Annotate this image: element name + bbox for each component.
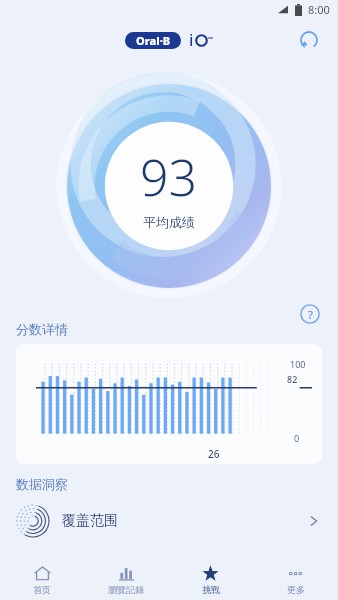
staticText: 首页 <box>33 584 51 595</box>
button[interactable]: 挑戰 <box>168 556 253 600</box>
staticText: 挑戰 <box>202 584 220 595</box>
staticText: ? <box>308 307 313 322</box>
button[interactable]: Refresh <box>294 25 324 55</box>
staticText: 93 <box>140 143 198 211</box>
staticText: 平均成绩 <box>143 214 195 230</box>
staticText: 瀏覽記錄 <box>108 584 144 595</box>
staticText: 更多 <box>287 584 305 595</box>
staticText: 82 <box>287 373 298 385</box>
button[interactable]: Help <box>296 300 324 328</box>
staticText: i <box>189 29 194 51</box>
staticText: 0 <box>294 432 300 444</box>
staticText: Oral·B <box>136 33 171 48</box>
button[interactable]: 首页 <box>0 556 84 600</box>
staticText: 100 <box>290 358 306 370</box>
staticText: 8:00 <box>308 2 330 17</box>
button[interactable]: 更多 <box>253 556 338 600</box>
button[interactable]: 100 <box>16 344 322 464</box>
button[interactable]: 覆盖范围 <box>0 498 338 544</box>
staticText: 数据洞察 <box>16 476 68 492</box>
button[interactable]: 瀏覽記錄 <box>84 556 168 600</box>
staticText: 覆盖范围 <box>62 512 306 530</box>
staticText: 26 <box>208 447 220 461</box>
staticText: 分数详情 <box>16 321 68 337</box>
